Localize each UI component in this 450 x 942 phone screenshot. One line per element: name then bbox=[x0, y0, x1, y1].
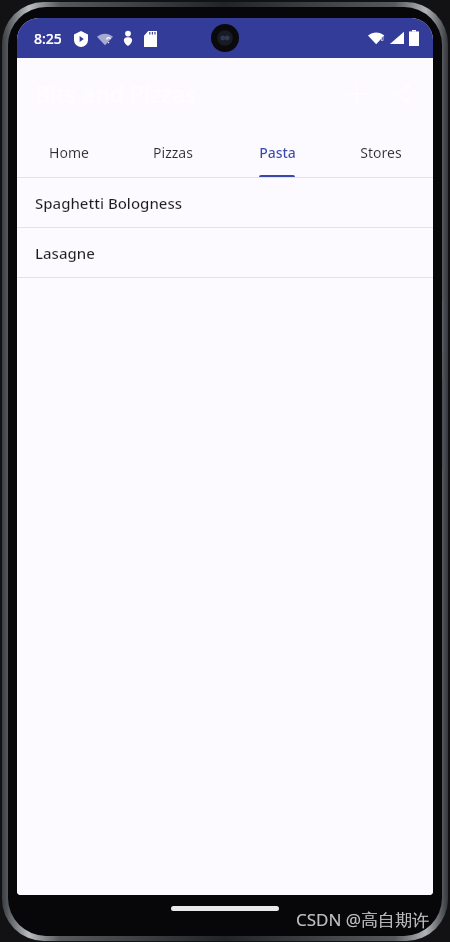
staticText: 8:25 bbox=[34, 29, 62, 48]
button[interactable]: Lasagne bbox=[17, 228, 433, 277]
staticText: Stores bbox=[360, 143, 402, 162]
staticText: CSDN @高自期许 bbox=[296, 908, 430, 931]
staticText: Lasagne bbox=[35, 243, 95, 263]
staticText: Spaghetti Bologness bbox=[35, 193, 182, 213]
staticText: Home bbox=[49, 143, 89, 162]
button[interactable]: Home bbox=[17, 129, 121, 178]
button[interactable]: Pizzas bbox=[121, 129, 225, 178]
button[interactable]: Pasta bbox=[225, 129, 329, 178]
button[interactable]: Spaghetti Bologness bbox=[17, 178, 433, 227]
staticText: Pasta bbox=[259, 143, 296, 162]
button[interactable]: Stores bbox=[329, 129, 433, 178]
staticText: Pizzas bbox=[153, 143, 193, 162]
